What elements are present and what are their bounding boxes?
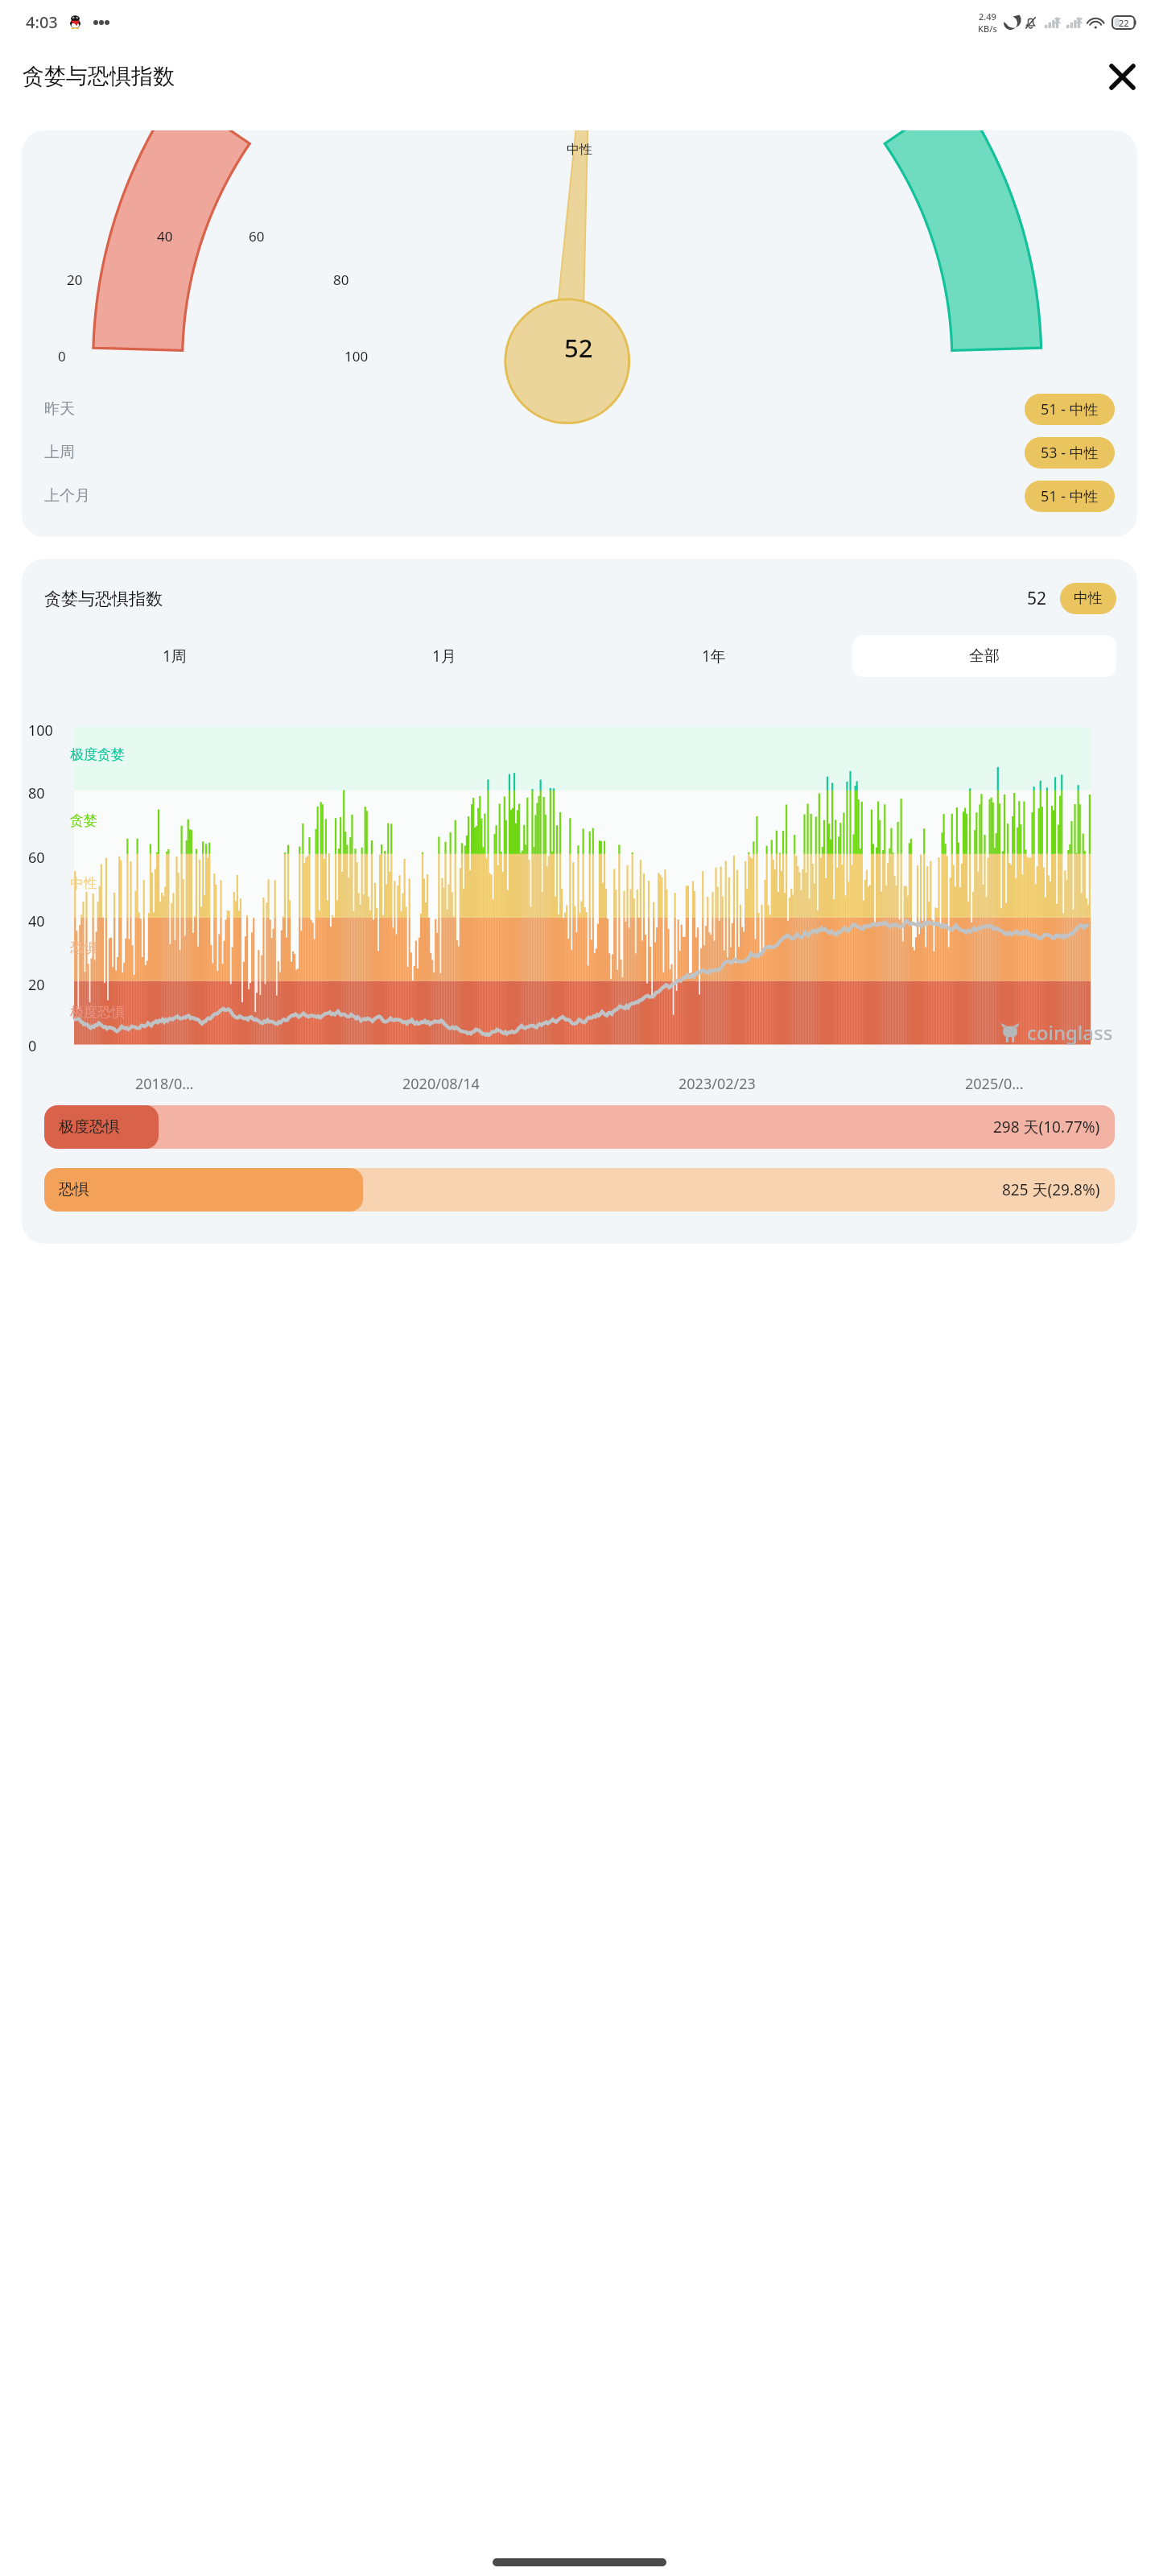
staticText: 极度恐惧: [59, 1117, 120, 1137]
button[interactable]: 极度恐惧: [44, 1105, 1115, 1149]
staticText: 40: [157, 227, 173, 246]
staticText: 53 - 中性: [1041, 443, 1099, 463]
staticText: 贪婪: [70, 812, 97, 829]
staticText: 100: [344, 347, 369, 365]
button[interactable]: 昨天: [22, 387, 1137, 431]
button[interactable]: 上个月: [22, 474, 1137, 518]
staticText: 1年: [702, 646, 726, 667]
button[interactable]: 1年: [582, 635, 846, 677]
staticText: 4:03: [26, 11, 58, 33]
staticText: 2020/08/14: [402, 1074, 480, 1094]
staticText: 80: [28, 783, 45, 803]
staticText: 52: [564, 331, 593, 365]
staticText: 中性: [567, 142, 592, 158]
button[interactable]: Close: [1101, 56, 1143, 97]
staticText: 51 - 中性: [1041, 486, 1099, 506]
staticText: 20: [28, 975, 45, 995]
staticText: 贪婪与恐惧指数: [44, 588, 163, 609]
staticText: 昨天: [44, 399, 75, 419]
staticText: 20: [67, 270, 83, 289]
staticText: 0: [58, 347, 66, 365]
staticText: 上个月: [44, 486, 90, 506]
staticText: 825 天(29.8%): [1002, 1179, 1100, 1200]
button[interactable]: 全部: [852, 635, 1116, 677]
staticText: 极度贪婪: [70, 746, 125, 763]
button[interactable]: 上周: [22, 431, 1137, 474]
staticText: coinglass: [1027, 1019, 1113, 1046]
staticText: 全部: [969, 646, 1000, 666]
staticText: 52: [1027, 587, 1047, 610]
button[interactable]: 1周: [43, 635, 306, 677]
staticText: 22: [1119, 17, 1129, 29]
staticText: 80: [333, 270, 349, 289]
button[interactable]: 恐惧: [44, 1168, 1115, 1212]
staticText: 上周: [44, 443, 75, 462]
button[interactable]: 1月: [312, 635, 575, 677]
staticText: 60: [249, 227, 265, 246]
staticText: KB/s: [978, 23, 997, 35]
staticText: 恐惧: [59, 1180, 89, 1199]
staticText: 极度恐惧: [70, 1004, 125, 1021]
staticText: 2023/02/23: [678, 1074, 756, 1094]
staticText: 2025/0…: [965, 1074, 1024, 1094]
staticText: 恐惧: [70, 939, 97, 956]
staticText: 0: [28, 1036, 37, 1056]
staticText: 1周: [163, 646, 187, 667]
staticText: 100: [28, 720, 53, 741]
staticText: 中性: [1074, 589, 1103, 608]
staticText: 298 天(10.77%): [993, 1117, 1100, 1137]
staticText: 1月: [432, 646, 456, 667]
staticText: 2018/0…: [135, 1074, 194, 1094]
staticText: 51 - 中性: [1041, 399, 1099, 419]
staticText: 60: [28, 848, 45, 868]
staticText: 40: [28, 911, 45, 931]
staticText: 贪婪与恐惧指数: [23, 63, 175, 90]
staticText: 2.49: [979, 10, 996, 23]
staticText: 中性: [70, 875, 97, 892]
